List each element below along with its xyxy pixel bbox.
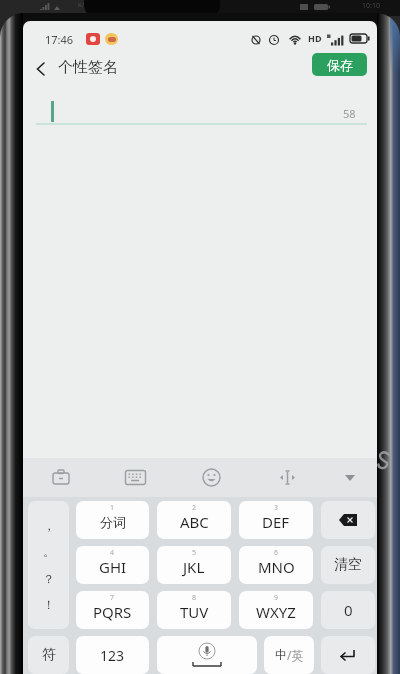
staticText: 2 (192, 503, 197, 513)
button[interactable]: 3 (239, 501, 313, 539)
button[interactable] (52, 469, 70, 485)
staticText: /英 (287, 647, 304, 663)
staticText: 10:10 (362, 1, 380, 11)
button[interactable] (125, 470, 146, 485)
button[interactable] (202, 468, 221, 487)
staticText: 符 (42, 646, 56, 664)
staticText: 3 (274, 503, 279, 513)
button[interactable]: 9 (239, 591, 313, 629)
button[interactable] (321, 636, 375, 674)
staticText: 9 (274, 593, 279, 603)
staticText: 58 (343, 106, 356, 121)
button[interactable]: 123 (76, 636, 149, 674)
staticText: GHI (99, 557, 127, 577)
button[interactable] (321, 501, 375, 539)
button[interactable]: 符 (28, 636, 69, 674)
staticText: 4 (110, 548, 115, 558)
button[interactable]: ， (28, 501, 69, 629)
staticText: 。 (43, 544, 55, 559)
button[interactable]: 0 (321, 591, 375, 629)
button[interactable]: 8 (157, 591, 231, 629)
staticText: ABC (180, 512, 209, 532)
button[interactable] (279, 470, 296, 485)
button[interactable]: 2 (157, 501, 231, 539)
staticText: 17:46 (45, 32, 74, 47)
button[interactable]: 清空 (321, 546, 375, 584)
button[interactable]: 5 (157, 546, 231, 584)
staticText: MNO (258, 557, 295, 577)
staticText: WXYZ (256, 602, 296, 622)
button[interactable]: 6 (239, 546, 313, 584)
staticText: 123 (100, 646, 125, 665)
staticText: 保存 (327, 57, 353, 73)
button[interactable] (36, 62, 46, 76)
staticText: TUV (180, 602, 209, 622)
button[interactable]: 4 (76, 546, 149, 584)
staticText: 个性签名 (58, 58, 118, 77)
staticText: ！ (43, 597, 55, 612)
staticText: 清空 (334, 556, 362, 574)
staticText: 分词 (100, 514, 126, 530)
staticText: ， (43, 518, 55, 533)
staticText: HD (308, 32, 322, 44)
button[interactable]: 1 (76, 501, 149, 539)
staticText: ？ (43, 571, 55, 586)
button[interactable]: 中 (264, 636, 314, 674)
staticText: K/s (78, 1, 87, 9)
button[interactable]: 7 (76, 591, 149, 629)
staticText: 5 (192, 548, 197, 558)
staticText: 1 (110, 503, 115, 513)
staticText: PQRS (93, 602, 132, 622)
staticText: 7 (110, 593, 115, 603)
staticText: JKL (183, 557, 205, 577)
staticText: 8 (192, 593, 197, 603)
staticText: 6 (274, 548, 279, 558)
button[interactable]: 保存 (312, 53, 367, 76)
staticText: DEF (262, 512, 290, 532)
staticText: 中 (275, 647, 287, 662)
staticText: 0 (344, 600, 353, 620)
button[interactable] (344, 474, 356, 482)
button[interactable] (157, 636, 257, 674)
